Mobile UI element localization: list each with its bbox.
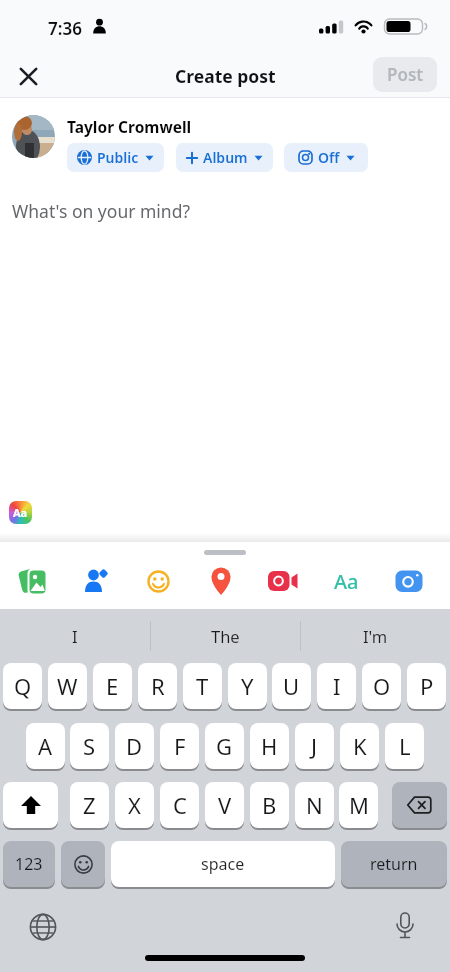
- staticText: 123: [15, 853, 43, 875]
- staticText: W: [57, 671, 78, 701]
- button[interactable]: [10, 58, 46, 94]
- button[interactable]: K: [340, 723, 379, 769]
- staticText: Taylor Cromwell: [67, 116, 192, 137]
- button[interactable]: W: [48, 663, 87, 709]
- button[interactable]: R: [138, 663, 177, 709]
- staticText: O: [373, 671, 391, 701]
- button[interactable]: Post: [373, 57, 437, 92]
- button[interactable]: D: [115, 723, 154, 769]
- button[interactable]: 123: [3, 841, 55, 887]
- staticText: Z: [83, 790, 96, 820]
- button[interactable]: O: [362, 663, 401, 709]
- button[interactable]: space: [111, 841, 335, 887]
- staticText: Y: [241, 671, 254, 701]
- staticText: C: [173, 790, 187, 820]
- button[interactable]: Aa: [9, 501, 32, 524]
- button[interactable]: J: [295, 723, 334, 769]
- button[interactable]: N: [295, 782, 334, 828]
- button[interactable]: I: [317, 663, 356, 709]
- staticText: E: [106, 671, 119, 701]
- button[interactable]: H: [250, 723, 289, 769]
- button[interactable]: [208, 567, 234, 596]
- button[interactable]: P: [407, 663, 446, 709]
- button[interactable]: G: [205, 723, 244, 769]
- staticText: S: [83, 731, 96, 761]
- staticText: Off: [318, 148, 340, 167]
- button[interactable]: F: [160, 723, 199, 769]
- staticText: A: [38, 731, 53, 761]
- staticText: L: [399, 731, 411, 761]
- staticText: Aa: [13, 505, 28, 520]
- staticText: K: [353, 731, 367, 761]
- button[interactable]: Z: [70, 782, 109, 828]
- staticText: The: [211, 625, 240, 647]
- button[interactable]: [61, 841, 105, 887]
- staticText: Album: [203, 148, 248, 167]
- button[interactable]: [18, 566, 50, 596]
- button[interactable]: B: [250, 782, 289, 828]
- staticText: Create post: [175, 64, 276, 88]
- staticText: U: [283, 671, 300, 701]
- button[interactable]: [392, 782, 447, 828]
- staticText: 7:36: [48, 17, 82, 40]
- staticText: Aa: [334, 568, 359, 594]
- staticText: I: [72, 625, 78, 647]
- button[interactable]: M: [339, 782, 378, 828]
- button[interactable]: U: [272, 663, 311, 709]
- button[interactable]: return: [341, 841, 447, 887]
- button[interactable]: Y: [228, 663, 267, 709]
- button[interactable]: [147, 570, 170, 593]
- staticText: J: [311, 731, 318, 761]
- button[interactable]: [29, 913, 57, 941]
- staticText: H: [261, 731, 278, 761]
- staticText: F: [174, 731, 186, 761]
- button[interactable]: L: [385, 723, 424, 769]
- staticText: M: [349, 790, 369, 820]
- staticText: Public: [97, 148, 139, 167]
- staticText: R: [151, 671, 165, 701]
- staticText: N: [306, 790, 323, 820]
- button[interactable]: Album: [176, 143, 273, 172]
- staticText: I: [333, 671, 341, 701]
- button[interactable]: [394, 912, 416, 942]
- staticText: Post: [387, 63, 424, 86]
- staticText: G: [216, 731, 233, 761]
- staticText: V: [218, 790, 232, 820]
- staticText: I'm: [363, 625, 388, 647]
- staticText: X: [128, 790, 141, 820]
- staticText: B: [262, 790, 277, 820]
- button[interactable]: [395, 569, 424, 593]
- button[interactable]: T: [183, 663, 222, 709]
- staticText: return: [370, 853, 418, 875]
- button[interactable]: Off: [284, 143, 368, 172]
- button[interactable]: Public: [67, 143, 164, 172]
- button[interactable]: [83, 567, 109, 595]
- button[interactable]: X: [115, 782, 154, 828]
- button[interactable]: Q: [3, 663, 42, 709]
- staticText: Q: [14, 671, 32, 701]
- button[interactable]: A: [26, 723, 65, 769]
- staticText: D: [126, 731, 143, 761]
- button[interactable]: [268, 569, 299, 593]
- button[interactable]: V: [205, 782, 244, 828]
- staticText: P: [420, 671, 434, 701]
- staticText: T: [196, 671, 209, 701]
- button[interactable]: E: [93, 663, 132, 709]
- staticText: space: [201, 853, 245, 875]
- button[interactable]: S: [70, 723, 109, 769]
- staticText: What's on your mind?: [12, 199, 191, 223]
- button[interactable]: C: [160, 782, 199, 828]
- button[interactable]: [3, 782, 58, 828]
